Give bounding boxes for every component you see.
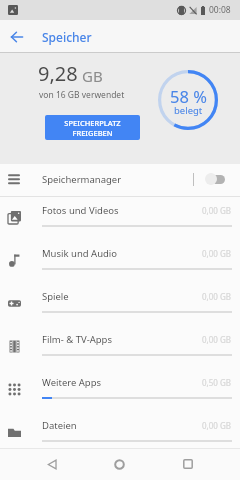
- button[interactable]: Spiele: [0, 283, 240, 326]
- staticText: Film- & TV-Apps: [42, 333, 113, 346]
- staticText: 0,50 GB: [202, 377, 231, 388]
- staticText: Speicher: [42, 29, 92, 45]
- button[interactable]: Fotos und Videos: [0, 197, 240, 240]
- staticText: Dateien: [42, 419, 77, 432]
- button[interactable]: Home: [103, 448, 136, 480]
- staticText: Musik und Audio: [42, 247, 118, 260]
- staticText: Weitere Apps: [42, 376, 102, 389]
- staticText: 9,28: [38, 60, 78, 87]
- staticText: belegt: [174, 104, 203, 117]
- staticText: GB: [82, 66, 103, 86]
- staticText: 0,00 GB: [202, 291, 231, 302]
- staticText: 0,00 GB: [202, 420, 231, 431]
- button[interactable]: SPEICHERPLATZ FREIGEBEN: [45, 115, 140, 140]
- button[interactable]: Musik und Audio: [0, 240, 240, 283]
- button[interactable]: Speichermanager: [0, 164, 240, 196]
- staticText: Spiele: [42, 290, 69, 303]
- staticText: 00:08: [209, 4, 231, 16]
- button[interactable]: Storage manager toggle: [205, 164, 225, 194]
- staticText: von 16 GB verwendet: [39, 89, 125, 101]
- button[interactable]: Recent apps: [171, 448, 204, 480]
- staticText: Fotos und Videos: [42, 204, 119, 217]
- button[interactable]: Weitere Apps: [0, 369, 240, 412]
- button[interactable]: Dateien: [0, 412, 240, 455]
- button[interactable]: Back: [36, 448, 69, 480]
- staticText: 0,00 GB: [202, 205, 231, 216]
- staticText: Speichermanager: [42, 173, 122, 186]
- button[interactable]: Back: [0, 20, 33, 53]
- staticText: 0,00 GB: [202, 334, 231, 345]
- staticText: 58 %: [170, 85, 207, 107]
- staticText: 0,00 GB: [202, 248, 231, 259]
- button[interactable]: Film- & TV-Apps: [0, 326, 240, 369]
- staticText: SPEICHERPLATZ FREIGEBEN: [64, 118, 121, 138]
